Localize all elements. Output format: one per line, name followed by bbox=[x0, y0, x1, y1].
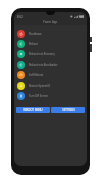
staticText: SETTINGS bbox=[62, 108, 75, 112]
staticText: Power App bbox=[43, 20, 58, 24]
staticText: Reboot into Recovery bbox=[29, 52, 55, 56]
button[interactable]: Reboot bbox=[14, 39, 87, 49]
staticText: Shutdown bbox=[29, 32, 42, 36]
button[interactable]: Turn Off Screen bbox=[14, 91, 87, 101]
button[interactable]: Shutdown bbox=[14, 29, 87, 39]
staticText: Soft Reboot bbox=[29, 73, 44, 77]
staticText: Reboot bbox=[29, 42, 38, 46]
button[interactable]: Restart SystemUI bbox=[14, 81, 87, 91]
staticText: Turn Off Screen bbox=[29, 94, 48, 98]
staticText: REBOOT MENU bbox=[23, 108, 43, 112]
button[interactable]: Soft Reboot bbox=[14, 70, 87, 80]
button[interactable]: Reboot into Recovery bbox=[14, 49, 87, 59]
staticText: Reboot into Bootloader bbox=[29, 63, 58, 67]
staticText: 8:52 bbox=[17, 15, 23, 19]
button[interactable]: REBOOT MENU bbox=[16, 107, 50, 113]
button[interactable]: Reboot into Bootloader bbox=[14, 60, 87, 70]
button[interactable]: SETTINGS bbox=[51, 107, 85, 113]
staticText: Restart SystemUI bbox=[29, 84, 50, 88]
